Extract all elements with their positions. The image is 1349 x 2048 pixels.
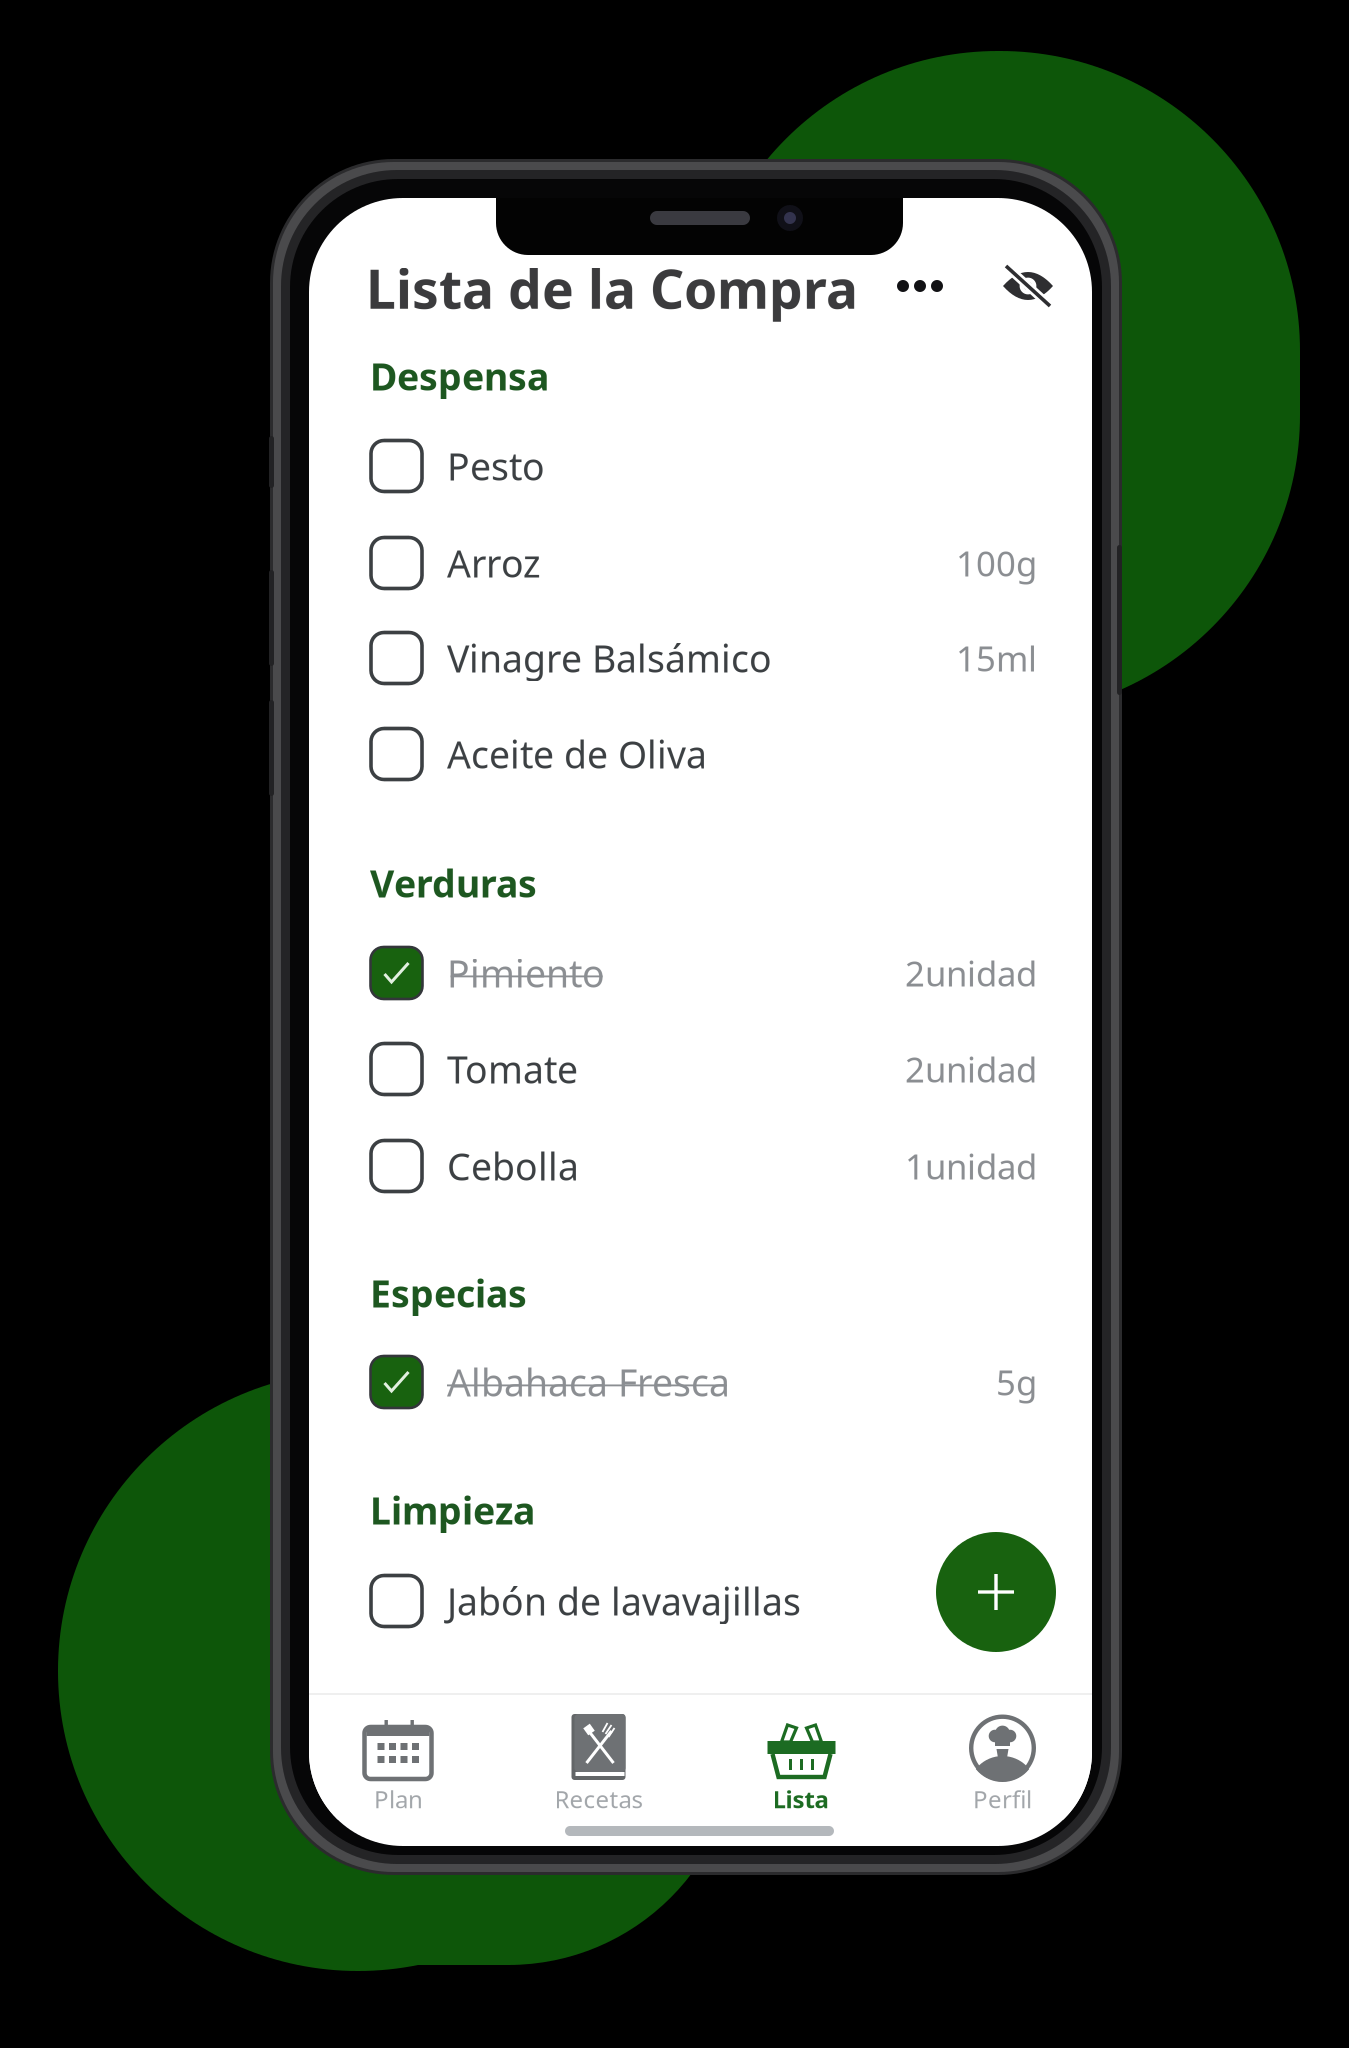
button[interactable]: Jabón de lavavajillas xyxy=(370,1563,1037,1639)
staticText: Recetas xyxy=(554,1783,642,1815)
staticText: 2unidad xyxy=(905,1046,1037,1092)
button[interactable]: Pesto xyxy=(370,428,1037,504)
staticText: Lista de la Compra xyxy=(366,253,858,323)
staticText: Pimiento xyxy=(447,948,605,998)
staticText: Aceite de Oliva xyxy=(447,729,707,779)
button[interactable]: Lista de la Compra xyxy=(366,262,926,314)
staticText: Albahaca Fresca xyxy=(447,1357,730,1407)
staticText: 5g xyxy=(996,1359,1037,1405)
staticText: Limpieza xyxy=(370,1485,535,1535)
staticText: 100g xyxy=(956,540,1037,586)
staticText: 2unidad xyxy=(905,950,1037,996)
button[interactable]: Tomate xyxy=(370,1031,1037,1107)
button[interactable]: Cebolla xyxy=(370,1128,1037,1204)
staticText: Jabón de lavavajillas xyxy=(447,1576,801,1626)
button[interactable]: Aceite de Oliva xyxy=(370,716,1037,792)
staticText: 15ml xyxy=(956,635,1037,681)
staticText: Especias xyxy=(370,1268,527,1318)
button[interactable]: Perfil xyxy=(905,1695,1100,1820)
staticText: 1unidad xyxy=(905,1143,1037,1189)
staticText: Despensa xyxy=(370,351,549,401)
button[interactable]: Add item xyxy=(936,1532,1056,1652)
staticText: Arroz xyxy=(447,538,541,588)
staticText: Pesto xyxy=(447,441,545,491)
staticText: Cebolla xyxy=(447,1141,579,1191)
button[interactable]: Albahaca Fresca xyxy=(370,1344,1037,1420)
button[interactable]: Lista xyxy=(703,1695,898,1820)
staticText: Plan xyxy=(374,1783,423,1815)
button[interactable]: Pimiento xyxy=(370,935,1037,1011)
staticText: Tomate xyxy=(447,1044,578,1094)
button[interactable]: Arroz xyxy=(370,525,1037,601)
staticText: Lista xyxy=(772,1783,828,1815)
button[interactable]: Recetas xyxy=(501,1695,696,1820)
staticText: Perfil xyxy=(973,1783,1032,1815)
staticText: Verduras xyxy=(370,858,537,908)
button[interactable]: Hide purchased items xyxy=(1001,264,1055,308)
button[interactable]: More options xyxy=(897,280,937,292)
button[interactable]: Vinagre Balsámico xyxy=(370,620,1037,696)
staticText: Vinagre Balsámico xyxy=(447,633,772,683)
button[interactable]: Plan xyxy=(301,1695,496,1820)
